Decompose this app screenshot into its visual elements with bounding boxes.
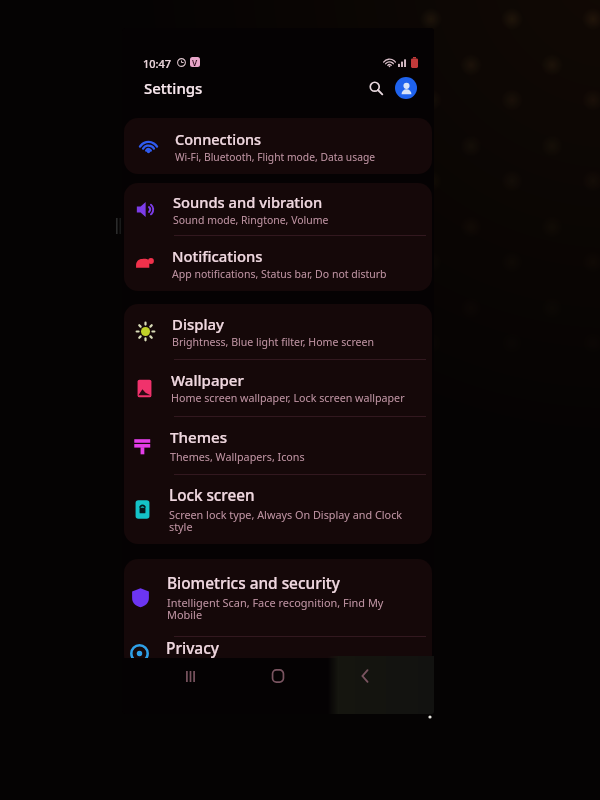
staticText: Privacy bbox=[166, 637, 220, 658]
staticText: Biometrics and security bbox=[167, 573, 340, 594]
staticText: Wi-Fi, Bluetooth, Flight mode, Data usag… bbox=[175, 150, 376, 164]
button[interactable]: Notifications bbox=[124, 236, 432, 291]
button[interactable]: Wallpaper bbox=[124, 360, 432, 417]
staticText: Wallpaper bbox=[171, 370, 244, 390]
staticText: 10:47 bbox=[143, 56, 172, 68]
button[interactable]: Biometrics and security bbox=[124, 559, 432, 637]
staticText: App notifications, Status bar, Do not di… bbox=[172, 267, 387, 281]
staticText: Screen lock type, Always On Display and … bbox=[169, 507, 408, 534]
staticText: Home screen wallpaper, Lock screen wallp… bbox=[171, 391, 405, 406]
staticText: Themes bbox=[170, 427, 228, 448]
button[interactable]: Home bbox=[255, 655, 301, 697]
button[interactable]: Recents bbox=[167, 655, 213, 697]
staticText: Lock screen bbox=[169, 485, 255, 506]
button[interactable]: Display bbox=[124, 304, 432, 360]
button[interactable]: Search bbox=[361, 73, 391, 103]
button[interactable]: Back bbox=[342, 655, 388, 697]
staticText: Intelligent Scan, Face recognition, Find… bbox=[167, 595, 406, 622]
staticText: V bbox=[192, 57, 198, 67]
staticText: Connections bbox=[175, 129, 262, 149]
button[interactable]: Privacy bbox=[124, 637, 432, 658]
staticText: Display bbox=[172, 314, 224, 334]
button[interactable]: Themes bbox=[124, 417, 432, 475]
button[interactable]: Account bbox=[395, 77, 417, 99]
staticText: Themes, Wallpapers, Icons bbox=[170, 449, 305, 464]
staticText: Sound mode, Ringtone, Volume bbox=[173, 213, 329, 227]
button[interactable]: Sounds and vibration bbox=[124, 183, 432, 236]
staticText: Brightness, Blue light filter, Home scre… bbox=[172, 335, 375, 349]
button[interactable]: Connections bbox=[124, 118, 432, 174]
button[interactable]: Lock screen bbox=[124, 475, 432, 544]
staticText: Sounds and vibration bbox=[173, 192, 323, 212]
staticText: Notifications bbox=[172, 246, 263, 266]
staticText: Settings bbox=[144, 78, 203, 98]
